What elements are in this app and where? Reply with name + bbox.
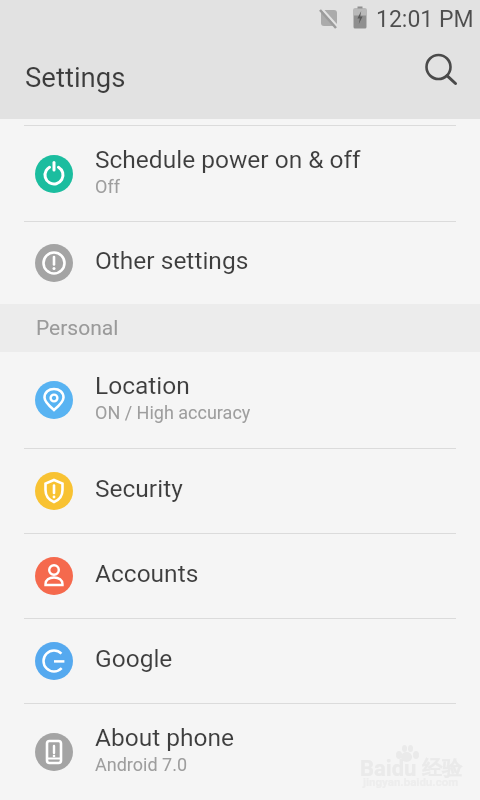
staticText: Accounts <box>95 559 199 588</box>
staticText: Google <box>95 644 173 673</box>
button[interactable]: About phone <box>0 704 480 800</box>
staticText: Off <box>95 176 120 197</box>
button[interactable]: Other settings <box>0 222 480 304</box>
button[interactable]: Security <box>0 449 480 533</box>
button[interactable]: Location <box>0 352 480 448</box>
staticText: Android 7.0 <box>95 754 187 775</box>
staticText: 经验 <box>422 756 462 781</box>
staticText: Settings <box>25 61 126 93</box>
staticText: Baidu <box>360 756 417 782</box>
staticText: Other settings <box>95 246 249 275</box>
staticText: Location <box>95 371 190 400</box>
staticText: ON / High accuracy <box>95 402 251 423</box>
button[interactable] <box>422 52 460 90</box>
staticText: About phone <box>95 723 235 752</box>
staticText: 12:01 PM <box>376 6 474 33</box>
button[interactable]: Google <box>0 619 480 703</box>
button[interactable]: Schedule power on & off <box>0 126 480 221</box>
staticText: jingyan.baidu.com <box>363 775 459 788</box>
staticText: Security <box>95 474 183 503</box>
staticText: Schedule power on & off <box>95 145 361 174</box>
button[interactable]: Accounts <box>0 534 480 618</box>
staticText: Personal <box>36 316 119 341</box>
